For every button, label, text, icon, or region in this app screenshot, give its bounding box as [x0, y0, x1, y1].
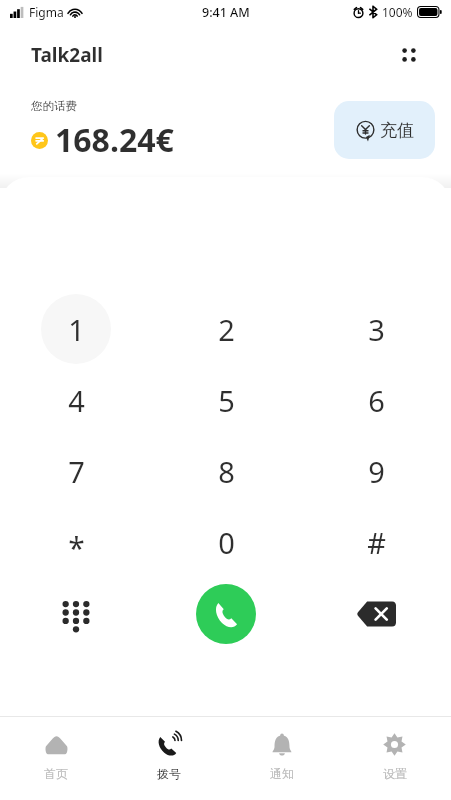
- button[interactable]: 充值: [334, 101, 435, 159]
- staticText: *: [68, 527, 85, 568]
- button[interactable]: Keypad: [46, 584, 106, 644]
- staticText: 168.24€: [55, 118, 174, 162]
- button[interactable]: 0: [191, 507, 261, 577]
- staticText: 1: [68, 310, 85, 349]
- button[interactable]: 通知: [225, 717, 338, 800]
- button[interactable]: 9: [341, 436, 411, 506]
- staticText: 7: [68, 452, 85, 491]
- button[interactable]: #: [341, 507, 411, 577]
- button[interactable]: 5: [191, 365, 261, 435]
- button[interactable]: 2: [191, 294, 261, 364]
- staticText: 2: [218, 310, 235, 349]
- staticText: #: [367, 523, 386, 562]
- staticText: 4: [68, 381, 85, 420]
- button[interactable]: 首页: [0, 717, 112, 800]
- staticText: 设置: [383, 766, 407, 781]
- button[interactable]: Backspace: [346, 584, 406, 644]
- button[interactable]: 8: [191, 436, 261, 506]
- staticText: 9: [368, 452, 385, 491]
- button[interactable]: 4: [41, 365, 111, 435]
- button[interactable]: Menu: [387, 33, 431, 77]
- staticText: Talk2all: [31, 42, 103, 68]
- staticText: 6: [368, 381, 385, 420]
- staticText: Figma: [29, 4, 64, 20]
- staticText: 首页: [44, 766, 68, 781]
- button[interactable]: 7: [41, 436, 111, 506]
- staticText: 通知: [270, 766, 294, 781]
- button[interactable]: 3: [341, 294, 411, 364]
- button[interactable]: Call: [196, 584, 256, 644]
- button[interactable]: 1: [41, 294, 111, 364]
- staticText: 3: [368, 310, 385, 349]
- staticText: 您的话费: [31, 99, 77, 113]
- staticText: 0: [218, 523, 235, 562]
- staticText: 拨号: [157, 766, 181, 781]
- staticText: 充值: [380, 120, 414, 141]
- staticText: 8: [218, 452, 235, 491]
- staticText: 5: [218, 381, 235, 420]
- button[interactable]: 拨号: [112, 717, 225, 800]
- button[interactable]: *: [41, 507, 111, 577]
- staticText: 100%: [382, 4, 413, 20]
- button[interactable]: 6: [341, 365, 411, 435]
- staticText: 9:41 AM: [202, 4, 250, 21]
- button[interactable]: 设置: [338, 717, 451, 800]
